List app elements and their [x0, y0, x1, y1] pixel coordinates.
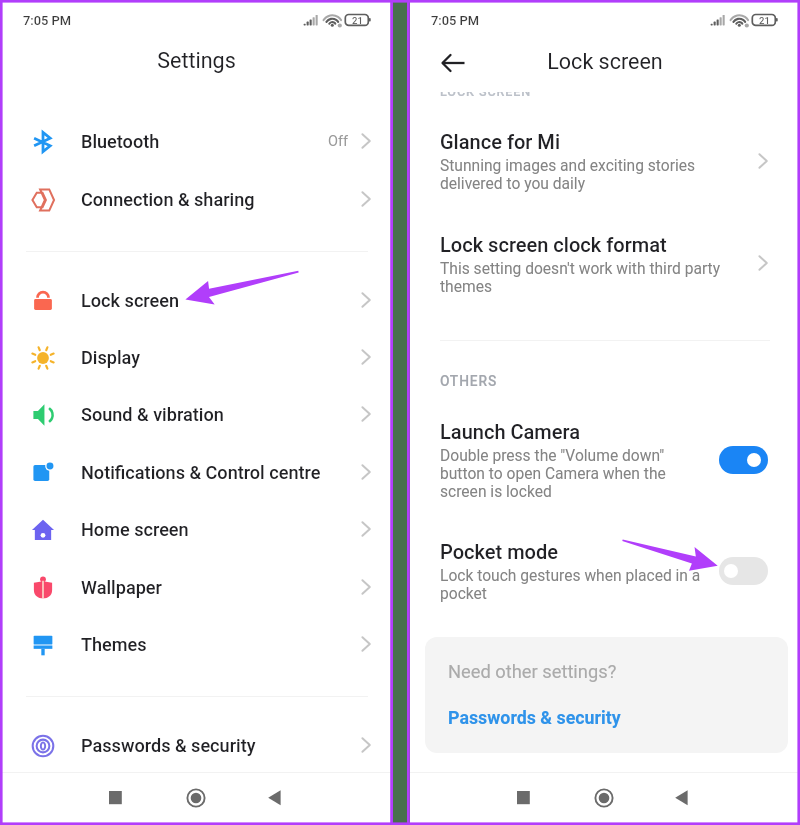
button[interactable]: Glance for Mi: [410, 116, 798, 202]
staticText: This setting doesn't work with third par…: [440, 260, 721, 278]
staticText: Passwords & security: [81, 735, 256, 756]
button[interactable]: Recents: [99, 781, 131, 813]
button[interactable]: Recents: [507, 781, 539, 813]
button[interactable]: Back: [433, 42, 475, 84]
button[interactable]: Display: [2, 337, 391, 394]
staticText: pocket: [440, 585, 487, 603]
staticText: Passwords & security: [448, 707, 621, 728]
staticText: Lock screen clock format: [440, 233, 667, 256]
button[interactable]: Pocket mode: [719, 557, 768, 585]
button[interactable]: Home screen: [2, 509, 391, 566]
staticText: 21: [759, 15, 770, 26]
staticText: Home screen: [81, 519, 189, 540]
button[interactable]: Back: [260, 782, 292, 814]
staticText: Wallpaper: [81, 577, 162, 598]
staticText: 7:05 PM: [23, 13, 72, 28]
staticText: Double press the "Volume down": [440, 447, 665, 465]
staticText: Stunning images and exciting stories: [440, 157, 696, 175]
staticText: delivered to you daily: [440, 175, 586, 193]
staticText: Settings: [2, 48, 391, 73]
button[interactable]: Need other settings?: [425, 637, 788, 753]
staticText: Launch Camera: [440, 420, 581, 443]
button[interactable]: Launch Camera: [410, 406, 798, 506]
button[interactable]: Pocket mode: [410, 526, 798, 626]
button[interactable]: Home: [180, 782, 212, 814]
button[interactable]: Themes: [2, 624, 391, 681]
staticText: Pocket mode: [440, 540, 558, 563]
staticText: Connection & sharing: [81, 189, 255, 210]
button[interactable]: Home: [588, 782, 620, 814]
staticText: 7:05 PM: [431, 13, 480, 28]
button[interactable]: Back: [667, 782, 699, 814]
staticText: button to open Camera when the: [440, 465, 666, 483]
staticText: Notifications & Control centre: [81, 462, 321, 483]
button[interactable]: Lock screen: [2, 280, 391, 337]
staticText: OTHERS: [440, 373, 498, 389]
staticText: Bluetooth: [81, 131, 160, 152]
staticText: themes: [440, 278, 492, 296]
staticText: Themes: [81, 634, 147, 655]
button[interactable]: Connection & sharing: [2, 179, 391, 236]
button[interactable]: Notifications & Control centre: [2, 452, 391, 509]
staticText: Lock screen: [81, 290, 180, 311]
staticText: Glance for Mi: [440, 130, 560, 153]
staticText: screen is locked: [440, 483, 552, 501]
staticText: 21: [352, 15, 363, 26]
button[interactable]: Lock screen clock format: [410, 219, 798, 305]
staticText: Off: [328, 133, 349, 150]
button[interactable]: Sound & vibration: [2, 394, 391, 451]
staticText: Lock touch gestures when placed in a: [440, 567, 701, 585]
staticText: Sound & vibration: [81, 404, 224, 425]
button[interactable]: Wallpaper: [2, 567, 391, 624]
button[interactable]: Bluetooth: [2, 121, 391, 178]
button[interactable]: Passwords & security: [2, 725, 391, 782]
staticText: LOCK SCREEN: [440, 92, 532, 96]
staticText: Need other settings?: [448, 661, 617, 682]
staticText: Display: [81, 347, 141, 368]
button[interactable]: Launch Camera: [719, 446, 768, 474]
staticText: Lock screen: [411, 49, 799, 74]
